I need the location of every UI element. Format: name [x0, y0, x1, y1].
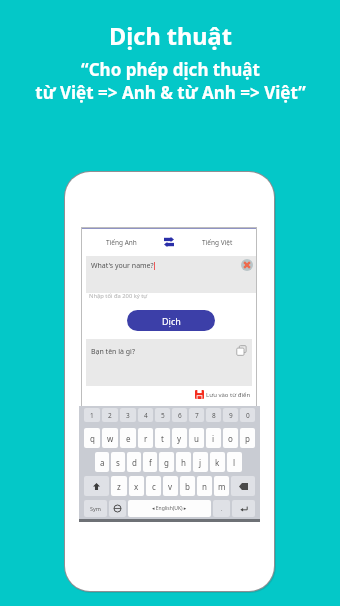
staticText: 0: [246, 411, 250, 420]
button[interactable]: Sym: [84, 500, 107, 517]
staticText: Tiếng Việt: [202, 238, 233, 247]
staticText: d: [132, 457, 137, 468]
staticText: j: [199, 457, 202, 468]
staticText: c: [152, 481, 156, 492]
staticText: 9: [229, 411, 233, 420]
button[interactable]: n: [197, 476, 212, 496]
button[interactable]: s: [111, 452, 125, 472]
staticText: Bạn tên là gì?: [91, 347, 135, 357]
staticText: u: [194, 433, 199, 444]
button[interactable]: y: [172, 428, 187, 448]
button[interactable]: Clear text: [240, 258, 253, 271]
staticText: p: [245, 433, 250, 444]
button[interactable]: g: [159, 452, 174, 472]
staticText: z: [117, 481, 121, 492]
staticText: r: [144, 433, 148, 444]
staticText: m: [218, 481, 226, 492]
staticText: Sym: [90, 505, 101, 512]
button[interactable]: Backspace: [231, 476, 255, 496]
button[interactable]: k: [210, 452, 225, 472]
button[interactable]: q: [84, 428, 100, 448]
button[interactable]: e: [120, 428, 136, 448]
staticText: Dịch thuật: [109, 20, 232, 52]
staticText: Dịch: [162, 315, 181, 327]
button[interactable]: 4: [138, 408, 153, 422]
staticText: a: [100, 457, 105, 468]
button[interactable]: Dịch: [127, 310, 215, 331]
staticText: i: [212, 433, 215, 444]
button[interactable]: d: [127, 452, 141, 472]
staticText: f: [149, 457, 152, 468]
button[interactable]: 7: [189, 408, 204, 422]
staticText: 2: [108, 411, 112, 420]
button[interactable]: Lưu vào từ điển: [195, 390, 251, 399]
staticText: 7: [195, 411, 199, 420]
staticText: 5: [161, 411, 165, 420]
button[interactable]: Enter: [232, 500, 255, 517]
staticText: v: [168, 481, 173, 492]
button[interactable]: j: [193, 452, 208, 472]
staticText: y: [177, 433, 182, 444]
button[interactable]: 1: [84, 408, 100, 422]
staticText: w: [107, 433, 114, 444]
staticText: Tiếng Anh: [106, 238, 137, 247]
button[interactable]: 2: [102, 408, 118, 422]
staticText: 6: [178, 411, 182, 420]
button[interactable]: Swap languages: [161, 234, 177, 250]
button[interactable]: ◂ English(UK) ▸: [128, 500, 211, 517]
staticText: h: [181, 457, 186, 468]
button[interactable]: r: [138, 428, 153, 448]
staticText: 3: [126, 411, 130, 420]
staticText: .: [221, 505, 223, 512]
button[interactable]: x: [129, 476, 144, 496]
button[interactable]: c: [146, 476, 161, 496]
button[interactable]: u: [189, 428, 204, 448]
staticText: t: [161, 433, 164, 444]
button[interactable]: m: [214, 476, 229, 496]
staticText: “Cho phép dịch thuật từ Việt => Anh & từ…: [35, 58, 306, 104]
button[interactable]: 3: [120, 408, 136, 422]
button[interactable]: b: [180, 476, 195, 496]
staticText: 1: [90, 411, 94, 420]
staticText: s: [116, 457, 120, 468]
staticText: x: [134, 481, 139, 492]
staticText: g: [164, 457, 169, 468]
button[interactable]: Shift: [84, 476, 109, 496]
staticText: What's your name?: [91, 261, 154, 271]
button[interactable]: 5: [155, 408, 170, 422]
button[interactable]: Tiếng Anh: [81, 229, 161, 255]
button[interactable]: w: [102, 428, 118, 448]
button[interactable]: 6: [172, 408, 187, 422]
staticText: Nhập tối đa 200 ký tự: [89, 292, 148, 300]
staticText: e: [126, 433, 131, 444]
staticText: n: [202, 481, 207, 492]
button[interactable]: h: [176, 452, 191, 472]
button[interactable]: z: [111, 476, 127, 496]
button[interactable]: .: [213, 500, 230, 517]
staticText: ◂ English(UK) ▸: [152, 505, 187, 512]
button[interactable]: t: [155, 428, 170, 448]
staticText: 8: [212, 411, 216, 420]
button[interactable]: o: [223, 428, 238, 448]
button[interactable]: Language: [109, 500, 126, 517]
button[interactable]: f: [143, 452, 157, 472]
button[interactable]: 8: [206, 408, 221, 422]
button[interactable]: Copy: [236, 345, 247, 356]
staticText: k: [215, 457, 220, 468]
staticText: l: [233, 457, 236, 468]
staticText: 4: [144, 411, 148, 420]
button[interactable]: 0: [240, 408, 255, 422]
button[interactable]: 9: [223, 408, 238, 422]
staticText: q: [90, 433, 95, 444]
button[interactable]: v: [163, 476, 178, 496]
button[interactable]: a: [95, 452, 109, 472]
staticText: b: [185, 481, 190, 492]
button[interactable]: l: [227, 452, 242, 472]
staticText: Lưu vào từ điển: [206, 391, 251, 399]
button[interactable]: p: [240, 428, 255, 448]
staticText: o: [228, 433, 233, 444]
button[interactable]: Tiếng Việt: [177, 229, 257, 255]
button[interactable]: i: [206, 428, 221, 448]
